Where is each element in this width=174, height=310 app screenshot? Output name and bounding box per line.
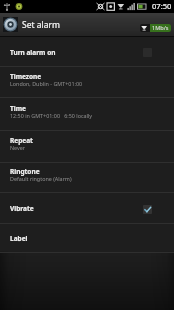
- staticText: London, Dublin - GMT+01:00: [10, 80, 83, 87]
- staticText: Label: [10, 234, 28, 243]
- button[interactable]: Network speed: [140, 24, 171, 32]
- staticText: Repeat: [10, 136, 33, 145]
- staticText: Never: [10, 144, 26, 151]
- button[interactable]: Vibrate: [0, 193, 174, 224]
- staticText: Ringtone: [10, 167, 40, 176]
- button[interactable]: Ringtone: [0, 163, 174, 193]
- staticText: Vibrate: [10, 204, 34, 213]
- button[interactable]: Toggle: [140, 202, 154, 216]
- button[interactable]: Repeat: [0, 131, 174, 163]
- staticText: Turn alarm on: [10, 48, 56, 57]
- staticText: 07:50: [152, 1, 172, 11]
- staticText: Time: [10, 104, 26, 113]
- button[interactable]: Time: [0, 98, 174, 131]
- button[interactable]: Label: [0, 224, 174, 253]
- button[interactable]: Turn alarm on: [0, 37, 174, 67]
- staticText: Default ringtone (Alarm): [10, 175, 72, 182]
- button[interactable]: Timezone: [0, 67, 174, 98]
- staticText: 1Mb/s: [152, 24, 169, 32]
- button[interactable]: Toggle: [140, 45, 154, 59]
- staticText: Set alarm: [22, 19, 60, 31]
- staticText: Timezone: [10, 72, 42, 81]
- staticText: 12:50 in GMT+01:00 6:50 locally: [10, 112, 93, 119]
